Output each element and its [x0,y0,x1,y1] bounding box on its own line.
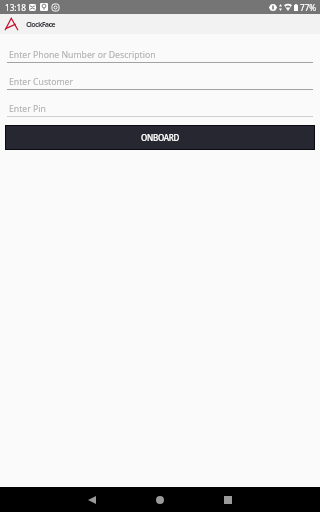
button[interactable]: Recents [204,487,252,512]
button[interactable]: Enter Customer [7,76,313,90]
staticText: ClockFace [26,19,55,29]
button[interactable]: Back [68,487,116,512]
button[interactable]: Enter Pin [7,103,313,117]
button[interactable]: ONBOARD [6,126,314,149]
staticText: Enter Pin [9,103,46,115]
staticText: 77% [300,2,317,13]
button[interactable]: Home [136,487,184,512]
staticText: ONBOARD [141,132,180,143]
staticText: Enter Phone Number or Description [9,49,156,61]
button[interactable]: Enter Phone Number or Description [7,49,313,63]
staticText: Enter Customer [9,76,74,88]
staticText: 13:18 [5,2,26,13]
